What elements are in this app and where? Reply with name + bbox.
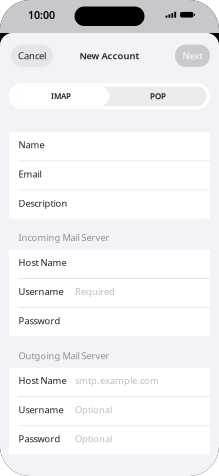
staticText: Email: [18, 168, 41, 180]
staticText: Required: [75, 285, 115, 298]
staticText: Optional: [75, 432, 112, 445]
staticText: Password: [18, 314, 60, 327]
staticText: Next: [182, 50, 202, 62]
staticText: Cancel: [18, 50, 46, 62]
staticText: New Account: [79, 50, 139, 62]
staticText: Username: [18, 285, 63, 298]
button[interactable]: Next: [175, 44, 210, 67]
staticText: smtp.example.com: [75, 374, 159, 387]
button[interactable]: Cancel: [11, 44, 53, 67]
staticText: Host Name: [18, 256, 66, 268]
staticText: Description: [18, 197, 67, 209]
button[interactable]: POP: [109, 86, 206, 106]
staticText: Name: [18, 138, 44, 151]
staticText: Incoming Mail Server: [18, 231, 109, 244]
staticText: Optional: [75, 403, 112, 416]
staticText: Username: [18, 403, 63, 416]
staticText: Outgoing Mail Server: [18, 349, 109, 362]
button[interactable]: IMAP: [12, 86, 109, 106]
staticText: 10:00: [28, 8, 55, 22]
staticText: Host Name: [18, 374, 66, 387]
staticText: IMAP: [51, 91, 71, 101]
staticText: Password: [18, 432, 60, 445]
staticText: POP: [150, 91, 166, 101]
